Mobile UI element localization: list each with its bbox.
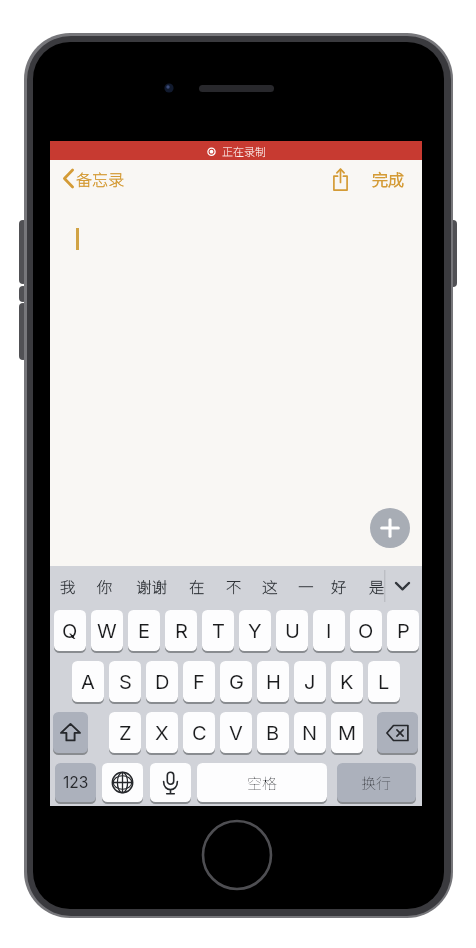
staticText: 正在录制 (222, 143, 266, 159)
staticText: O (358, 619, 374, 643)
staticText: 备忘录 (76, 167, 125, 190)
staticText: 我 (60, 575, 76, 597)
staticText: D (155, 670, 170, 694)
staticText: W (97, 619, 117, 643)
staticText: 在 (189, 575, 205, 597)
staticText: 好 (331, 575, 347, 597)
staticText: 不 (226, 575, 242, 597)
staticText: Y (248, 619, 262, 643)
staticText: N (302, 721, 318, 745)
staticText: A (81, 670, 95, 694)
staticText: R (175, 619, 188, 643)
staticText: 一 (298, 575, 314, 597)
staticText: 好 (331, 575, 347, 597)
staticText: 备忘录 (76, 167, 125, 190)
staticText: L (378, 670, 390, 694)
staticText: B (266, 721, 280, 745)
staticText: 完成 (372, 167, 405, 190)
staticText: S (119, 670, 132, 694)
staticText: 123 (63, 773, 89, 792)
staticText: 你 (97, 575, 113, 597)
staticText: 不 (226, 575, 242, 597)
staticText: 我 (60, 575, 76, 597)
staticText: 在 (189, 575, 205, 597)
staticText: I (326, 619, 332, 643)
staticText: 谢谢 (136, 575, 167, 597)
staticText: T (212, 619, 225, 643)
staticText: 换行 (361, 772, 392, 794)
staticText: Z (119, 721, 132, 745)
staticText: 是 (369, 575, 384, 597)
staticText: 一 (298, 575, 314, 597)
staticText: K (340, 670, 354, 694)
staticText: G (229, 670, 244, 694)
staticText: E (138, 619, 151, 643)
staticText: 这 (262, 575, 278, 597)
staticText: 是 (369, 575, 384, 597)
staticText: 这 (262, 575, 278, 597)
staticText: V (229, 721, 243, 745)
staticText: H (266, 670, 281, 694)
staticText: P (397, 619, 410, 643)
staticText: 空格 (247, 772, 278, 794)
staticText: J (304, 670, 316, 694)
staticText: M (338, 721, 357, 745)
staticText: 谢谢 (136, 575, 167, 597)
staticText: 完成 (372, 167, 405, 190)
staticText: 你 (97, 575, 113, 597)
staticText: U (285, 619, 300, 643)
staticText: F (193, 670, 205, 694)
staticText: X (155, 721, 169, 745)
staticText: C (192, 721, 207, 745)
staticText: Q (62, 619, 78, 643)
